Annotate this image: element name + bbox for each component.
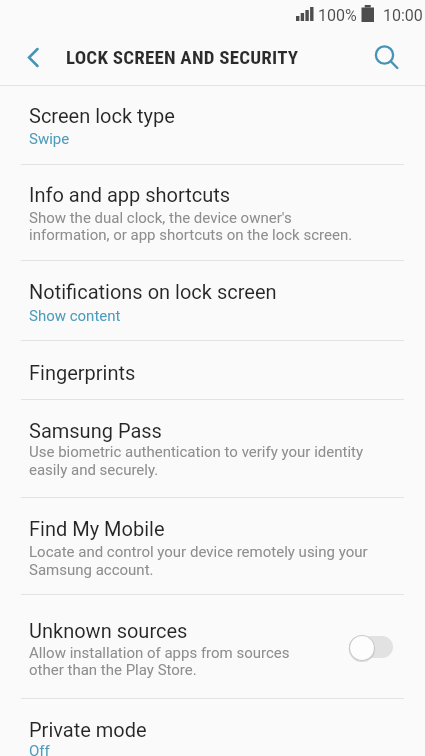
button[interactable]: Notifications on lock screen bbox=[0, 261, 425, 340]
button[interactable]: Screen lock type bbox=[0, 86, 425, 164]
staticText: other than the Play Store. bbox=[29, 661, 197, 679]
staticText: Info and app shortcuts bbox=[29, 183, 231, 206]
staticText: Samsung Pass bbox=[29, 419, 162, 442]
staticText: Swipe bbox=[29, 130, 70, 148]
staticText: Show content bbox=[29, 307, 121, 325]
button[interactable] bbox=[0, 30, 56, 85]
staticText: 100% bbox=[318, 6, 357, 25]
staticText: Unknown sources bbox=[29, 619, 188, 642]
button[interactable]: Fingerprints bbox=[0, 341, 425, 399]
staticText: Private mode bbox=[29, 718, 147, 741]
staticText: Notifications on lock screen bbox=[29, 280, 277, 303]
staticText: Screen lock type bbox=[29, 104, 175, 127]
button[interactable]: Info and app shortcuts bbox=[0, 165, 425, 260]
staticText: Samsung account. bbox=[29, 561, 154, 579]
staticText: Fingerprints bbox=[29, 361, 136, 384]
staticText: easily and securely. bbox=[29, 461, 159, 479]
staticText: Use biometric authentication to verify y… bbox=[29, 443, 364, 461]
button[interactable]: Unknown sources bbox=[0, 595, 425, 698]
button[interactable] bbox=[357, 30, 413, 85]
staticText: LOCK SCREEN AND SECURITY bbox=[66, 46, 299, 68]
staticText: Show the dual clock, the device owner's bbox=[29, 209, 292, 227]
staticText: Locate and control your device remotely … bbox=[29, 543, 368, 561]
staticText: 10:00 bbox=[383, 6, 423, 25]
staticText: information, or app shortcuts on the loc… bbox=[29, 226, 353, 244]
button[interactable]: Find My Mobile bbox=[0, 498, 425, 594]
button[interactable]: Private mode bbox=[0, 699, 425, 756]
staticText: Find My Mobile bbox=[29, 517, 165, 540]
button[interactable]: Samsung Pass bbox=[0, 400, 425, 497]
staticText: Off bbox=[29, 742, 50, 756]
staticText: Allow installation of apps from sources bbox=[29, 644, 290, 662]
